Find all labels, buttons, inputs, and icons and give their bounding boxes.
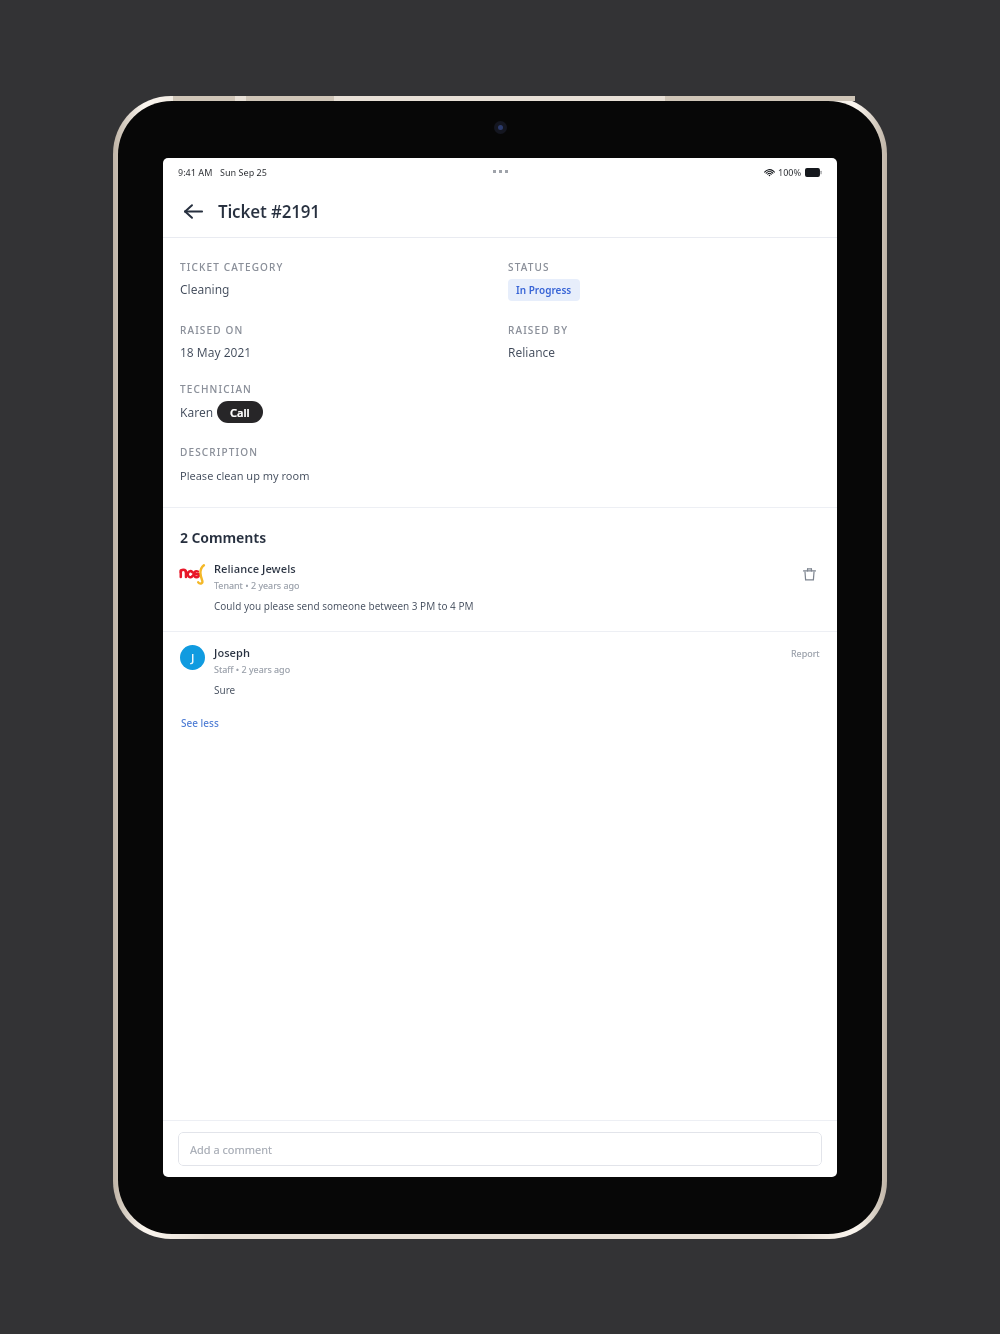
button[interactable]: Back: [178, 196, 208, 226]
staticText: 2 Comments: [180, 528, 267, 547]
staticText: DESCRIPTION: [180, 445, 259, 459]
staticText: 9:41 AM: [178, 166, 213, 178]
staticText: Sure: [214, 683, 236, 697]
staticText: TICKET CATEGORY: [180, 260, 284, 274]
staticText: TECHNICIAN: [180, 382, 253, 396]
staticText: Report: [791, 647, 820, 659]
staticText: Call: [230, 405, 250, 419]
staticText: 100%: [778, 166, 802, 178]
staticText: Karen: [180, 404, 214, 420]
staticText: 18 May 2021: [180, 344, 252, 360]
staticText: Please clean up my room: [180, 468, 310, 483]
staticText: RAISED ON: [180, 323, 244, 337]
button[interactable]: Delete comment: [796, 561, 822, 587]
button[interactable]: See less: [180, 714, 220, 732]
staticText: Add a comment: [190, 1142, 272, 1157]
staticText: Staff • 2 years ago: [214, 663, 291, 675]
staticText: STATUS: [508, 260, 550, 274]
staticText: Reliance Jewels: [214, 561, 296, 576]
staticText: Could you please send someone between 3 …: [214, 599, 474, 613]
staticText: Ticket #2191: [218, 200, 320, 223]
staticText: Reliance: [508, 344, 556, 360]
staticText: In Progress: [516, 283, 572, 297]
staticText: See less: [181, 716, 219, 730]
button[interactable]: Report: [789, 645, 822, 661]
button[interactable]: Add a comment: [178, 1132, 822, 1166]
staticText: RAISED BY: [508, 323, 569, 337]
staticText: Tenant • 2 years ago: [214, 579, 300, 591]
button[interactable]: Call: [217, 401, 263, 423]
staticText: Cleaning: [180, 281, 230, 297]
staticText: J: [191, 650, 195, 665]
staticText: Sun Sep 25: [220, 166, 267, 178]
staticText: Joseph: [214, 645, 250, 660]
button[interactable]: In Progress: [508, 279, 580, 301]
